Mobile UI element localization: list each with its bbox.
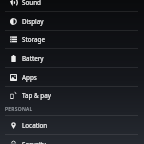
staticText: PERSONAL [5, 106, 33, 113]
staticText: Security [22, 140, 46, 144]
button[interactable]: Security [0, 135, 144, 144]
staticText: Sound [22, 0, 41, 7]
button[interactable]: Apps [0, 68, 144, 87]
button[interactable]: Sound [0, 0, 144, 12]
button[interactable]: Battery [0, 49, 144, 68]
staticText: Storage [22, 35, 45, 44]
button[interactable]: Tap & pay [0, 86, 144, 105]
button[interactable]: Display [0, 12, 144, 31]
button[interactable]: Storage [0, 31, 144, 49]
staticText: Battery [22, 54, 44, 63]
staticText: Tap & pay [22, 91, 51, 100]
button[interactable]: Location [0, 116, 144, 135]
staticText: Apps [22, 73, 37, 82]
staticText: Location [22, 121, 48, 130]
staticText: Display [22, 17, 44, 26]
